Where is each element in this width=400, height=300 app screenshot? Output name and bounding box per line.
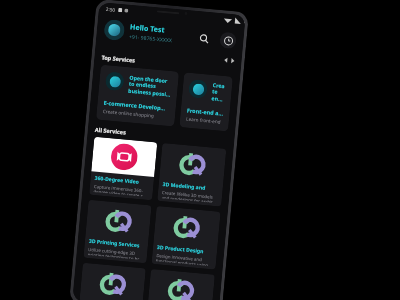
staticText: 2:50 <box>106 6 115 13</box>
staticText: 3D Product Design <box>157 244 204 255</box>
staticText: 3D Modeling and <box>162 181 206 192</box>
staticText: E-commerce Development <box>103 99 170 112</box>
button[interactable]: 3D Modeling and <box>157 143 226 207</box>
staticText: Create engaging interfaces with modern f… <box>211 81 226 103</box>
staticText: All Services <box>95 126 127 136</box>
button[interactable]: Profile <box>103 19 125 41</box>
button[interactable]: VR Experiences <box>147 269 215 300</box>
button[interactable]: History <box>219 31 237 49</box>
button[interactable]: 3D Printing Services <box>83 200 152 263</box>
staticText: Design innovative and functional product… <box>156 252 212 266</box>
button[interactable]: 360-Degree Video <box>89 137 157 200</box>
staticText: Capture immersive 360-degree video to cr… <box>93 183 149 197</box>
staticText: Create online shopping platforms and tap… <box>103 108 169 120</box>
staticText: Top Services <box>101 53 135 64</box>
staticText: Learn front-end frameworks for fast web … <box>186 115 223 125</box>
staticText: +91- 98765-XXXXX <box>129 33 173 44</box>
button[interactable]: AR Development <box>79 263 146 300</box>
button[interactable]: Create engaging interfaces with modern f… <box>179 72 233 131</box>
button[interactable]: Search <box>195 29 212 47</box>
button[interactable]: 3D Product Design <box>151 206 221 270</box>
staticText: Front-end and JavaScript <box>187 106 224 117</box>
staticText: Open the door to endless business possib… <box>128 73 172 99</box>
staticText: Hello Test <box>129 22 166 36</box>
staticText: 3D Printing Services <box>89 238 140 249</box>
button[interactable]: Open the door to endless business possib… <box>96 65 179 127</box>
staticText: 360-Degree Video <box>94 175 140 186</box>
staticText: Utilize cutting-edge 3D printing technol… <box>88 246 143 260</box>
staticText: Create lifelike 3D models and renderings… <box>161 189 218 203</box>
